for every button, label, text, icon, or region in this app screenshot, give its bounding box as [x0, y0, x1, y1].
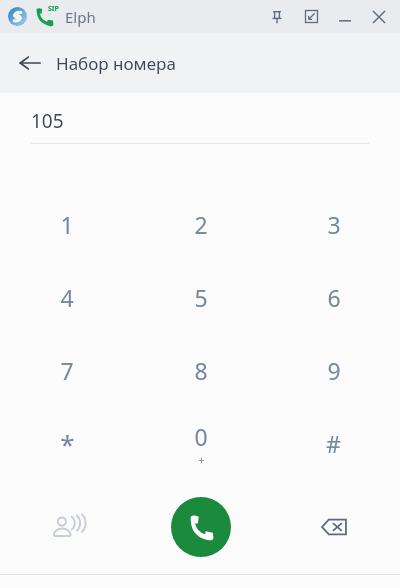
staticText: # [326, 428, 341, 459]
staticText: Elph [65, 7, 96, 27]
staticText: 105 [31, 108, 64, 134]
staticText: + [198, 452, 205, 467]
staticText: Набор номера [56, 52, 176, 75]
button[interactable]: 9 [267, 334, 400, 407]
button[interactable]: 5 [134, 261, 267, 334]
staticText: 1 [60, 209, 74, 240]
button[interactable]: 0 [134, 407, 267, 480]
staticText: 8 [194, 355, 208, 386]
button[interactable]: 105 [31, 105, 369, 137]
button[interactable]: 7 [0, 334, 134, 407]
staticText: 0 [194, 421, 208, 452]
staticText: 9 [327, 355, 341, 386]
staticText: * [60, 426, 75, 461]
button[interactable]: Restore window [294, 0, 328, 33]
staticText: 7 [60, 355, 74, 386]
staticText: 6 [327, 282, 341, 313]
button[interactable]: 6 [267, 261, 400, 334]
button[interactable]: Backspace [267, 490, 400, 564]
staticText: 5 [194, 282, 208, 313]
button[interactable]: Minimize window [328, 0, 362, 33]
staticText: SIP [48, 4, 59, 14]
staticText: 4 [60, 282, 74, 313]
button[interactable]: Back [10, 43, 50, 83]
button[interactable]: 8 [134, 334, 267, 407]
staticText: 3 [327, 209, 341, 240]
button[interactable]: Voice dial [0, 490, 134, 564]
button[interactable]: Call [171, 497, 231, 557]
button[interactable]: 2 [134, 188, 267, 261]
staticText: 2 [194, 209, 208, 240]
button[interactable]: 4 [0, 261, 134, 334]
button[interactable]: # [267, 407, 400, 480]
button[interactable]: 3 [267, 188, 400, 261]
button[interactable]: Pin window [260, 0, 294, 33]
button[interactable]: * [0, 407, 134, 480]
button[interactable]: Close window [362, 0, 396, 33]
button[interactable]: 1 [0, 188, 134, 261]
